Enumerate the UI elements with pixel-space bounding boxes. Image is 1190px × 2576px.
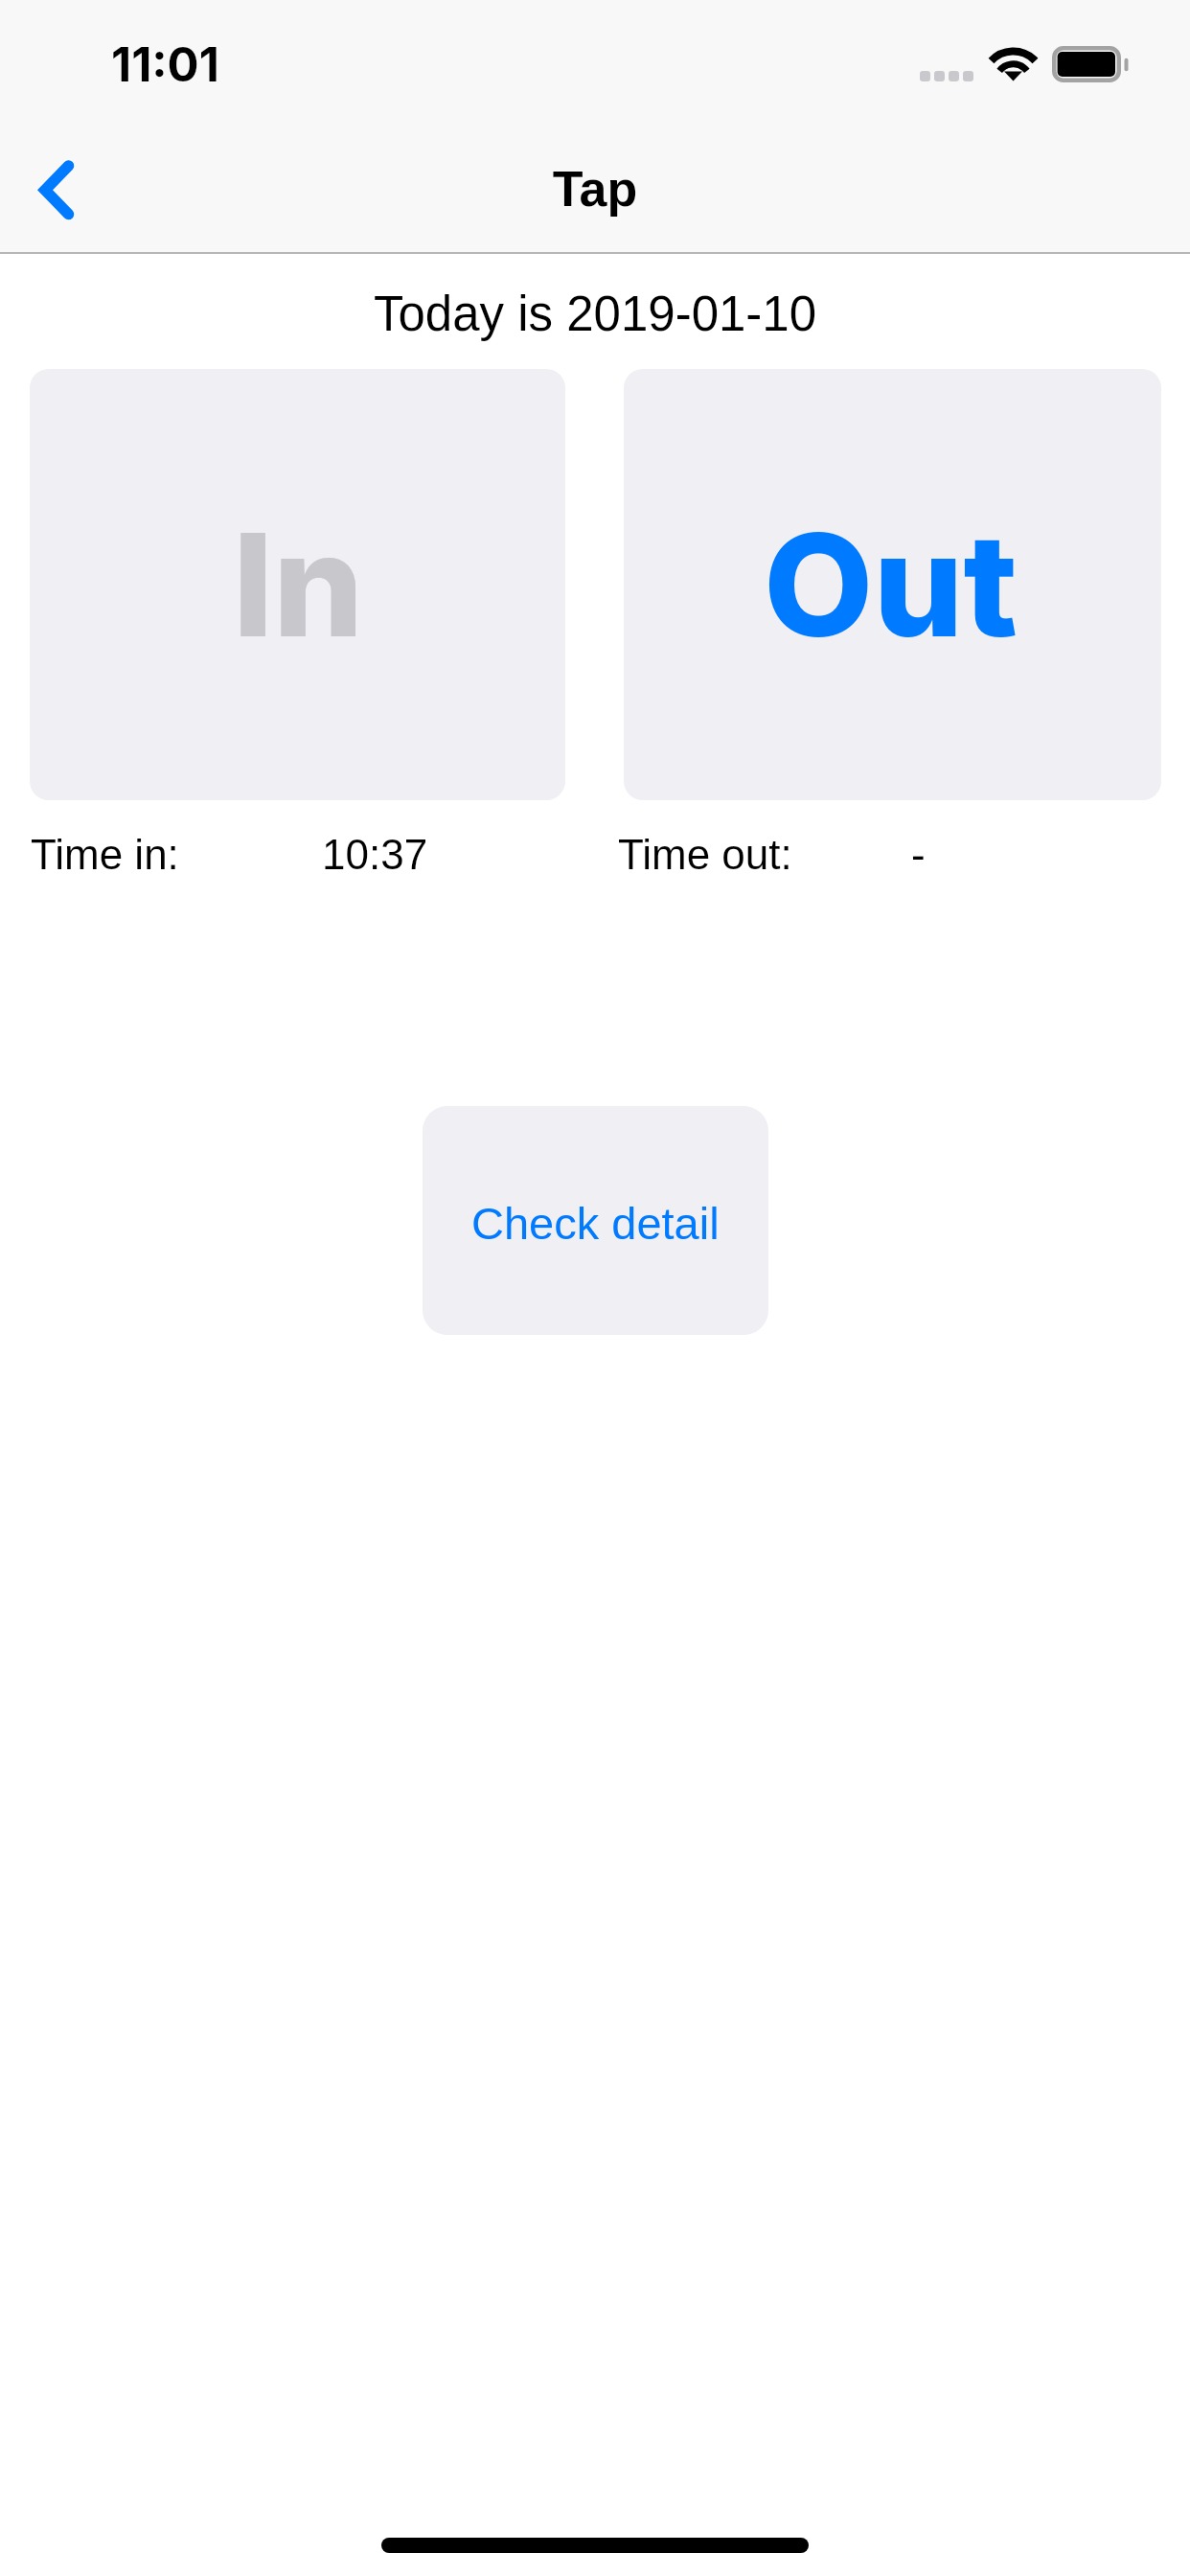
button[interactable]: Check detail (423, 1106, 768, 1335)
staticText: Check detail (471, 1198, 720, 1249)
staticText: - (911, 831, 926, 878)
staticText: Time out: (618, 831, 792, 878)
staticText: 10:37 (322, 831, 428, 878)
staticText: Time in: (31, 831, 179, 878)
button[interactable]: Out (624, 369, 1161, 800)
button[interactable]: In (30, 369, 565, 800)
staticText: 11:01 (111, 36, 219, 93)
staticText: Tap (0, 161, 1190, 217)
staticText: Today is 2019-01-10 (0, 287, 1190, 341)
button[interactable]: Back (0, 139, 111, 242)
staticText: In (233, 499, 364, 671)
staticText: Out (764, 499, 1018, 671)
